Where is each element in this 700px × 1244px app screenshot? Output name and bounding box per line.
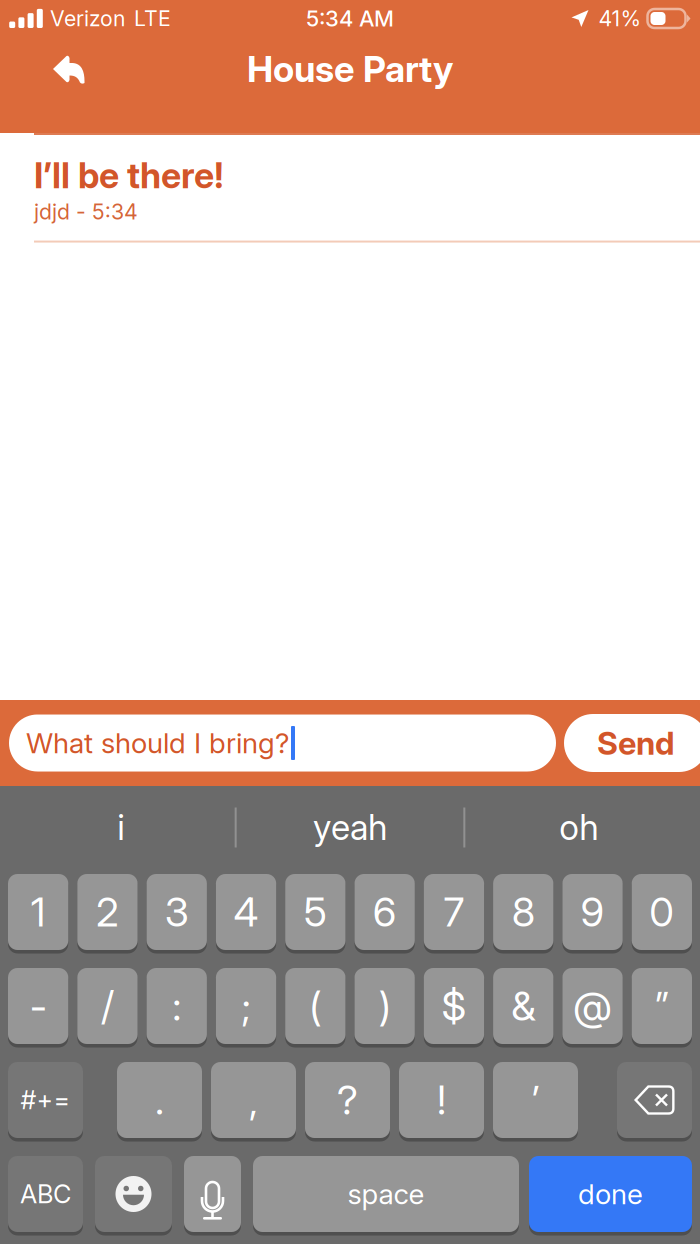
staticText: oh: [559, 806, 598, 848]
button[interactable]: Delete: [617, 1063, 692, 1139]
button[interactable]: i: [8, 786, 235, 869]
button[interactable]: 2: [77, 875, 138, 951]
staticText: House Party: [247, 47, 453, 91]
staticText: ABC: [20, 1179, 71, 1209]
button[interactable]: ABC: [8, 1157, 83, 1233]
staticText: i: [117, 806, 125, 848]
staticText: space: [347, 1177, 424, 1211]
staticText: Verizon: [50, 6, 126, 31]
staticText: What should I bring?: [26, 726, 289, 760]
button[interactable]: What should I bring?: [9, 714, 556, 771]
staticText: Send: [597, 724, 675, 762]
button[interactable]: 6: [354, 875, 415, 951]
staticText: #+=: [20, 1085, 70, 1115]
staticText: ?: [337, 1076, 358, 1124]
staticText: 8: [512, 888, 535, 936]
button[interactable]: 3: [147, 875, 207, 951]
button[interactable]: 7: [424, 875, 484, 951]
button[interactable]: oh: [465, 786, 692, 869]
staticText: ): [379, 982, 391, 1030]
button[interactable]: ’: [493, 1063, 578, 1139]
button[interactable]: (: [285, 969, 345, 1045]
staticText: $: [441, 982, 466, 1030]
staticText: 7: [443, 888, 464, 936]
button[interactable]: @: [562, 969, 623, 1045]
staticText: yeah: [313, 806, 387, 848]
button[interactable]: -: [8, 969, 68, 1045]
button[interactable]: 1: [8, 875, 68, 951]
staticText: done: [578, 1177, 643, 1211]
staticText: (: [309, 982, 321, 1030]
button[interactable]: &: [493, 969, 553, 1045]
staticText: LTE: [134, 6, 171, 31]
button[interactable]: Emoji: [95, 1157, 172, 1233]
button[interactable]: #+=: [8, 1063, 83, 1139]
staticText: 4: [233, 888, 258, 936]
staticText: jdjd - 5:34: [34, 199, 138, 225]
staticText: ’: [531, 1076, 539, 1124]
button[interactable]: Dictate: [184, 1157, 241, 1233]
button[interactable]: .: [117, 1063, 202, 1139]
button[interactable]: 8: [493, 875, 553, 951]
button[interactable]: !: [399, 1063, 484, 1139]
staticText: 5:34 AM: [306, 5, 394, 32]
staticText: 0: [649, 888, 674, 936]
staticText: !: [437, 1076, 446, 1124]
staticText: 2: [96, 888, 119, 936]
staticText: 5: [304, 888, 327, 936]
button[interactable]: $: [424, 969, 484, 1045]
staticText: ,: [249, 1076, 258, 1124]
staticText: 41%: [598, 6, 641, 31]
staticText: &: [511, 982, 535, 1030]
button[interactable]: ,: [211, 1063, 296, 1139]
staticText: I’ll be there!: [34, 154, 224, 197]
button[interactable]: 0: [632, 875, 692, 951]
staticText: 9: [580, 888, 604, 936]
button[interactable]: ): [354, 969, 415, 1045]
button[interactable]: Back: [33, 36, 105, 102]
button[interactable]: 4: [216, 875, 276, 951]
button[interactable]: 9: [562, 875, 623, 951]
staticText: -: [30, 982, 47, 1030]
staticText: ”: [655, 982, 669, 1030]
staticText: @: [573, 982, 612, 1030]
staticText: 3: [165, 888, 189, 936]
staticText: 6: [373, 888, 397, 936]
button[interactable]: done: [529, 1157, 692, 1233]
button[interactable]: yeah: [237, 786, 463, 869]
staticText: ;: [241, 982, 250, 1030]
button[interactable]: space: [253, 1157, 519, 1233]
button[interactable]: ?: [305, 1063, 390, 1139]
staticText: :: [172, 982, 181, 1030]
button[interactable]: :: [147, 969, 207, 1045]
button[interactable]: 5: [285, 875, 345, 951]
button[interactable]: ”: [632, 969, 692, 1045]
staticText: /: [101, 982, 114, 1030]
button[interactable]: Send: [564, 714, 700, 772]
button[interactable]: /: [77, 969, 138, 1045]
staticText: .: [155, 1076, 164, 1124]
button[interactable]: ;: [216, 969, 276, 1045]
staticText: 1: [31, 888, 46, 936]
